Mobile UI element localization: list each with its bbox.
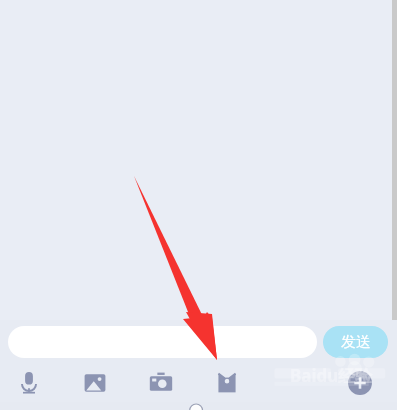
button[interactable]: 发送	[323, 326, 388, 358]
button[interactable]: Send picture	[74, 364, 116, 402]
button[interactable]	[8, 326, 317, 358]
staticText: 发送	[341, 333, 371, 352]
button[interactable]: Voice message	[8, 364, 50, 402]
button[interactable]: More options	[339, 364, 381, 402]
button[interactable]: Send red packet	[206, 364, 248, 402]
staticText: Baidu经验	[290, 364, 373, 387]
button[interactable]: Take photo	[140, 364, 182, 402]
